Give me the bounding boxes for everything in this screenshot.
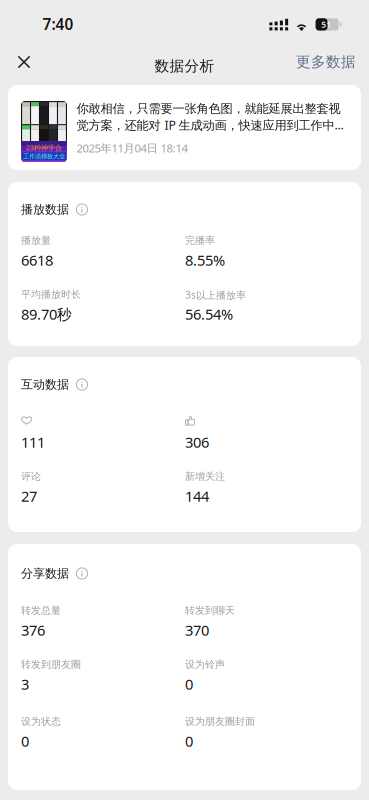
staticText: 你敢相信，只需要一张角色图，就能延展出整套视觉方案，还能对 IP 生成动画，快速…	[76, 101, 348, 133]
staticText: 111	[21, 432, 45, 452]
staticText: 0	[185, 674, 193, 694]
staticText: 144	[185, 486, 209, 506]
staticText: 转发总量	[21, 604, 61, 617]
staticText: 播放量	[21, 234, 51, 247]
staticText: 27	[21, 486, 37, 506]
staticText: 设为朋友圈封面	[185, 715, 255, 728]
staticText: 0	[21, 731, 29, 751]
staticText: 370	[185, 620, 209, 640]
staticText: 转发到聊天	[185, 604, 235, 617]
button[interactable]: 更多数据	[283, 45, 369, 79]
staticText: 23种神学合	[26, 143, 62, 152]
button[interactable]: 关闭	[9, 45, 39, 79]
staticText: 平均播放时长	[21, 288, 81, 301]
staticText: 评论	[21, 470, 41, 483]
staticText: 376	[21, 620, 45, 640]
button[interactable]: 23种神学合	[8, 85, 361, 170]
staticText: 更多数据	[296, 53, 356, 71]
staticText: 0	[185, 731, 193, 751]
staticText: 分享数据	[21, 566, 69, 581]
staticText: 3	[21, 674, 29, 694]
staticText: 8.55%	[185, 250, 225, 270]
staticText: 2025年11月04日 18:14	[76, 140, 187, 156]
staticText: 设为状态	[21, 715, 61, 728]
staticText: 56.54%	[185, 304, 233, 324]
staticText: 7:40	[42, 13, 73, 34]
staticText: 互动数据	[21, 377, 69, 392]
staticText: 306	[185, 432, 209, 452]
staticText: 转发到朋友圈	[21, 658, 81, 671]
staticText: 播放数据	[21, 202, 69, 217]
staticText: 工作流模板大全	[23, 152, 65, 160]
staticText: 完播率	[185, 234, 215, 247]
staticText: 3s以上播放率	[185, 288, 246, 302]
staticText: 新增关注	[185, 470, 225, 483]
staticText: 数据分析	[154, 57, 214, 75]
staticText: 设为铃声	[185, 658, 225, 671]
staticText: 6618	[21, 250, 53, 270]
staticText: 51	[321, 19, 331, 30]
staticText: 89.70秒	[21, 304, 72, 324]
